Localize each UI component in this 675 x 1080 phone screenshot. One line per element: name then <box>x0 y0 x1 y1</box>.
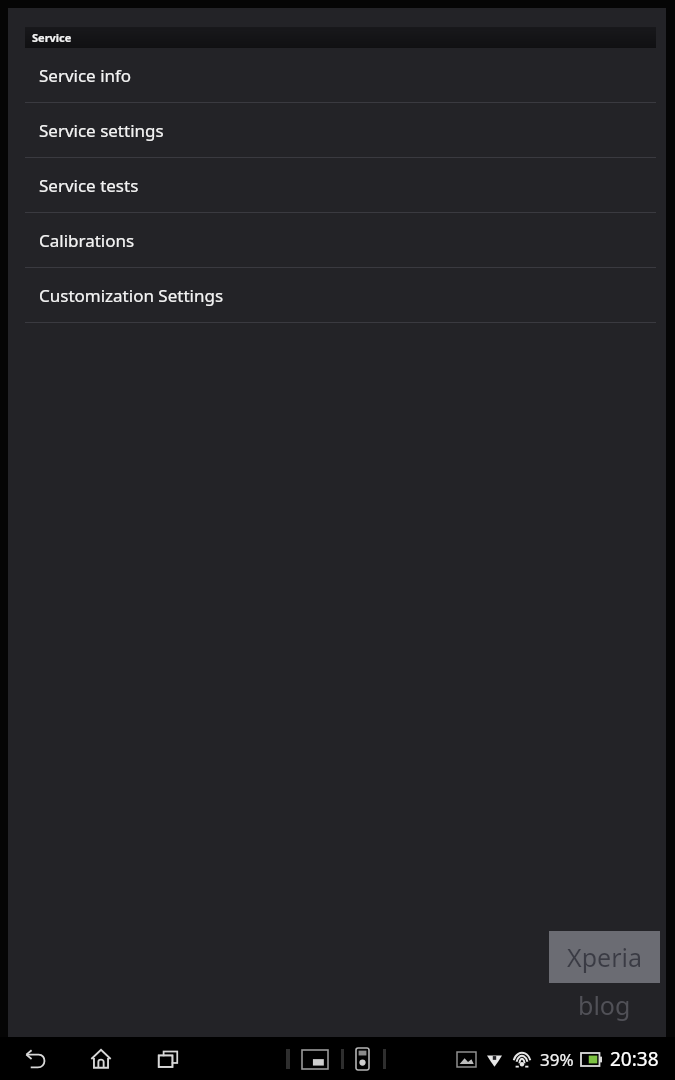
staticText: Service tests <box>39 174 139 197</box>
button[interactable]: Service info <box>8 48 666 103</box>
button[interactable]: Small apps <box>296 1044 334 1074</box>
staticText: 20:38 <box>610 1046 659 1072</box>
button[interactable]: Back <box>14 1037 58 1080</box>
staticText: Service settings <box>39 119 164 142</box>
button[interactable]: Remote control <box>349 1044 375 1074</box>
staticText: Service <box>32 30 72 45</box>
staticText: Xperia <box>567 940 642 974</box>
button[interactable]: Service settings <box>8 103 666 158</box>
staticText: Calibrations <box>39 229 135 252</box>
button[interactable]: Recent apps <box>146 1037 190 1080</box>
staticText: Service info <box>39 64 132 87</box>
staticText: Customization Settings <box>39 284 224 307</box>
button[interactable]: Customization Settings <box>8 268 666 323</box>
button[interactable]: Calibrations <box>8 213 666 268</box>
staticText: blog <box>578 988 631 1022</box>
button[interactable]: Service tests <box>8 158 666 213</box>
staticText: 39% <box>540 1048 574 1071</box>
button[interactable]: Home <box>79 1037 123 1080</box>
